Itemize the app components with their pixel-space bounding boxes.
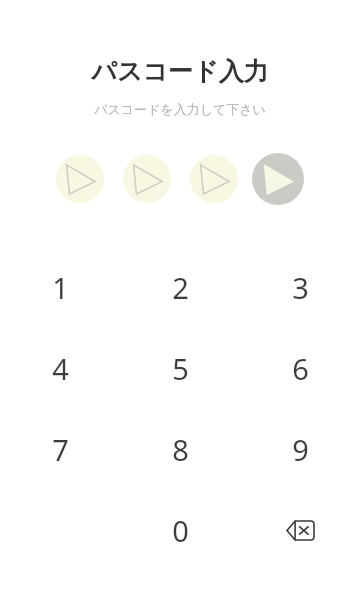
staticText: 4 xyxy=(52,349,69,388)
button[interactable]: 3 xyxy=(240,267,360,307)
staticText: 3 xyxy=(292,268,309,307)
button[interactable]: 2 xyxy=(120,267,240,307)
staticText: パスコードを入力して下さい xyxy=(94,101,266,117)
staticText: 1 xyxy=(52,268,69,307)
button[interactable]: 8 xyxy=(120,429,240,469)
staticText: 7 xyxy=(52,430,69,469)
button[interactable]: 4 xyxy=(0,348,120,388)
button[interactable]: 5 xyxy=(120,348,240,388)
staticText: パスコード入力 xyxy=(91,56,269,87)
staticText: 5 xyxy=(172,349,189,388)
button[interactable]: Backspace xyxy=(240,510,360,550)
staticText: 8 xyxy=(172,430,189,469)
button[interactable]: 6 xyxy=(240,348,360,388)
button[interactable]: 7 xyxy=(0,429,120,469)
staticText: 9 xyxy=(292,430,309,469)
button[interactable]: 0 xyxy=(120,510,240,550)
button[interactable]: 1 xyxy=(0,267,120,307)
staticText: 2 xyxy=(172,268,189,307)
button[interactable]: 9 xyxy=(240,429,360,469)
staticText: 6 xyxy=(292,349,309,388)
staticText: 0 xyxy=(172,511,189,550)
